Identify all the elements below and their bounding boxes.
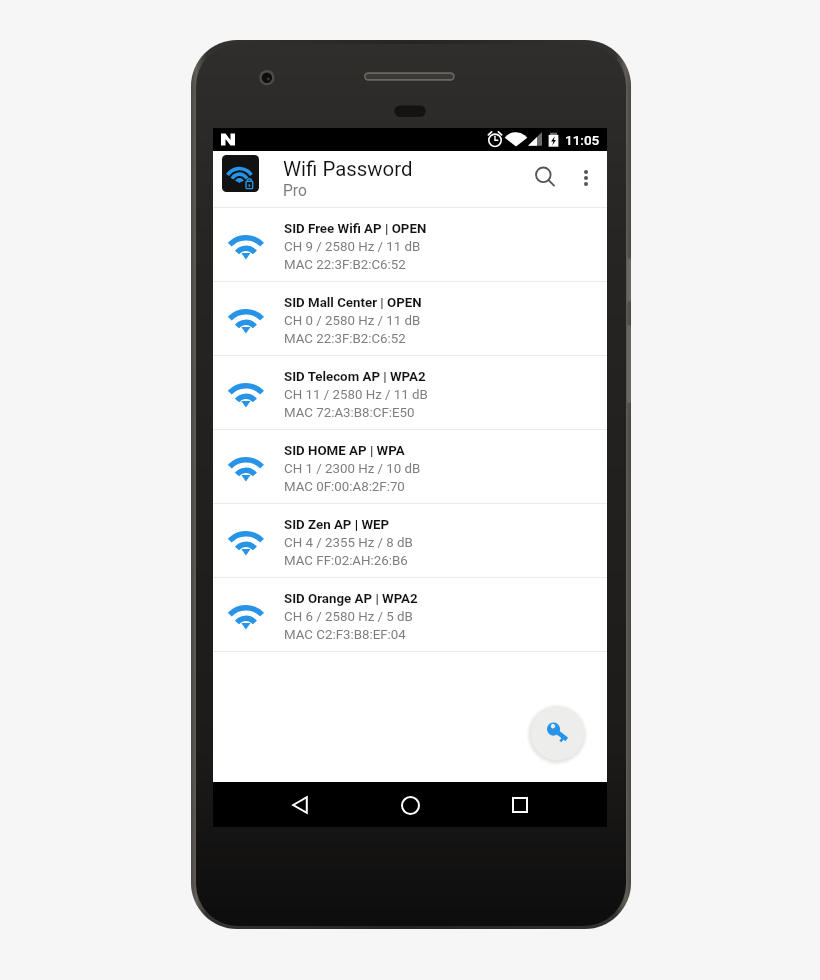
staticText: 11:05 [565, 132, 600, 148]
staticText: CH 9 / 2580 Hz / 11 dB [284, 239, 421, 255]
staticText: Pro [283, 182, 307, 200]
staticText: MAC FF:02:AH:26:B6 [284, 553, 408, 569]
staticText: CH 11 / 2580 Hz / 11 dB [284, 387, 428, 403]
staticText: MAC C2:F3:B8:EF:04 [284, 627, 406, 643]
button[interactable]: SID Orange AP | WPA2 [213, 578, 607, 652]
button[interactable]: More options [566, 158, 606, 198]
staticText: MAC 0F:00:A8:2F:70 [284, 479, 405, 495]
button[interactable]: App icon [222, 155, 259, 192]
button[interactable]: SID HOME AP | WPA [213, 430, 607, 504]
button[interactable]: Show password [531, 707, 584, 760]
staticText: MAC 72:A3:B8:CF:E50 [284, 405, 415, 421]
staticText: SID Free Wifi AP | OPEN [284, 221, 427, 237]
staticText: SID Orange AP | WPA2 [284, 591, 418, 607]
staticText: CH 0 / 2580 Hz / 11 dB [284, 313, 421, 329]
button[interactable]: SID Mall Center | OPEN [213, 282, 607, 356]
staticText: MAC 22:3F:B2:C6:52 [284, 257, 406, 273]
staticText: SID Zen AP | WEP [284, 517, 390, 533]
staticText: CH 4 / 2355 Hz / 8 dB [284, 535, 413, 551]
button[interactable]: SID Telecom AP | WPA2 [213, 356, 607, 430]
button[interactable]: Back [278, 783, 322, 827]
staticText: MAC 22:3F:B2:C6:52 [284, 331, 406, 347]
staticText: CH 6 / 2580 Hz / 5 dB [284, 609, 413, 625]
button[interactable]: SID Zen AP | WEP [213, 504, 607, 578]
staticText: SID Mall Center | OPEN [284, 295, 422, 311]
staticText: CH 1 / 2300 Hz / 10 dB [284, 461, 421, 477]
button[interactable]: Recents [498, 783, 542, 827]
button[interactable]: Home [388, 783, 432, 827]
staticText: SID HOME AP | WPA [284, 443, 405, 459]
button[interactable]: SID Free Wifi AP | OPEN [213, 208, 607, 282]
staticText: SID Telecom AP | WPA2 [284, 369, 426, 385]
staticText: Wifi Password [283, 157, 413, 181]
button[interactable]: Search [525, 157, 565, 197]
